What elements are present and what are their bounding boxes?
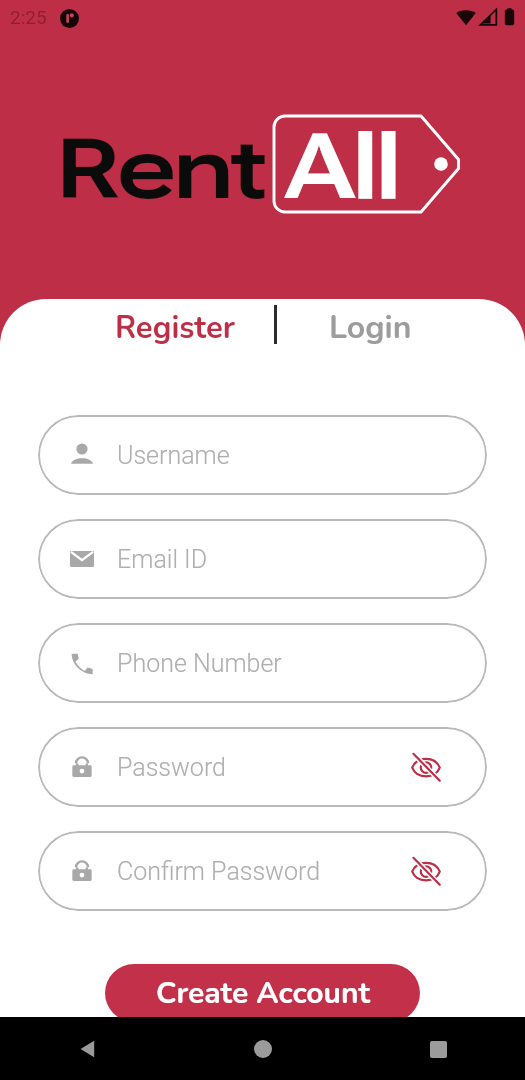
- staticText: Email ID: [117, 545, 208, 574]
- staticText: Password: [117, 753, 226, 782]
- staticText: Username: [117, 441, 230, 470]
- staticText: 2:25: [10, 6, 47, 28]
- button[interactable]: Username: [38, 415, 487, 495]
- button[interactable]: Phone Number: [38, 623, 487, 703]
- staticText: All: [285, 115, 400, 220]
- button[interactable]: Show password: [399, 740, 453, 794]
- button[interactable]: Recent apps: [413, 1024, 463, 1074]
- staticText: Phone Number: [117, 649, 282, 678]
- staticText: Rent: [57, 121, 265, 218]
- button[interactable]: Login: [277, 304, 463, 352]
- button[interactable]: Confirm Password: [38, 831, 487, 911]
- button[interactable]: Register: [52, 304, 298, 352]
- button[interactable]: Home: [238, 1024, 288, 1074]
- button[interactable]: Password: [38, 727, 487, 807]
- button[interactable]: Show password: [399, 844, 453, 898]
- staticText: Login: [329, 306, 412, 350]
- button[interactable]: Email ID: [38, 519, 487, 599]
- staticText: Confirm Password: [117, 857, 321, 886]
- staticText: Create Account: [156, 973, 370, 1014]
- button[interactable]: Back: [63, 1024, 113, 1074]
- staticText: Register: [115, 307, 235, 349]
- button[interactable]: Create Account: [105, 964, 420, 1022]
